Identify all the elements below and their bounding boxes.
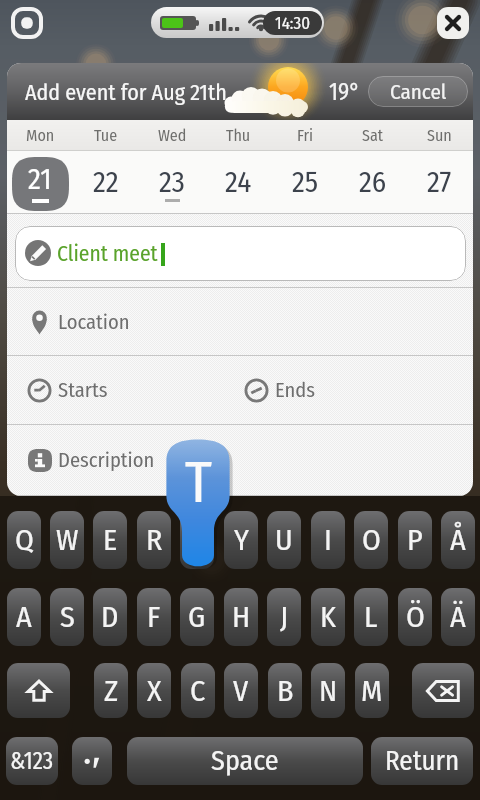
button[interactable]: K — [311, 588, 345, 646]
button[interactable]: &123 — [6, 737, 58, 785]
button[interactable]: B — [268, 663, 302, 718]
button[interactable]: 26 — [339, 151, 406, 214]
button[interactable]: 21 — [7, 151, 73, 214]
staticText: U — [275, 522, 293, 558]
staticText: 21 — [28, 162, 52, 197]
staticText: Description — [58, 448, 155, 473]
button[interactable]: J — [267, 588, 301, 646]
button[interactable]: Ö — [398, 588, 432, 646]
staticText: Ö — [406, 599, 425, 635]
button[interactable]: Home — [11, 7, 43, 39]
staticText: Y — [234, 522, 249, 558]
button[interactable]: A — [7, 588, 41, 646]
staticText: Tue — [94, 126, 118, 145]
staticText: M — [361, 673, 383, 709]
staticText: 25 — [292, 165, 319, 200]
button[interactable]: O — [354, 511, 388, 569]
staticText: C — [190, 673, 206, 709]
staticText: 26 — [359, 165, 387, 200]
staticText: Client meet — [57, 241, 158, 267]
staticText: J — [280, 599, 289, 635]
staticText: Å — [450, 522, 466, 558]
staticText: D — [101, 599, 119, 635]
button[interactable]: 22 — [73, 151, 139, 214]
staticText: 27 — [427, 165, 452, 200]
staticText: Add event for Aug 21th — [25, 79, 227, 105]
staticText: Fri — [297, 126, 314, 145]
button[interactable]: Starts — [21, 356, 171, 425]
button[interactable]: N — [311, 663, 345, 718]
button[interactable]: Close — [437, 7, 469, 39]
button[interactable]: F — [137, 588, 171, 646]
button[interactable]: 23 — [139, 151, 205, 214]
staticText: H — [232, 599, 251, 635]
staticText: Ä — [450, 599, 466, 635]
button[interactable]: Status indicators — [151, 7, 324, 38]
staticText: Location — [58, 310, 130, 335]
button[interactable]: Backspace — [412, 663, 474, 718]
button[interactable]: Client meet — [15, 226, 466, 281]
button[interactable]: U — [267, 511, 301, 569]
staticText: Wed — [158, 126, 187, 145]
button[interactable]: Cancel — [368, 76, 468, 107]
button[interactable]: M — [355, 663, 389, 718]
button[interactable]: R — [137, 511, 171, 569]
button[interactable]: Ends — [237, 356, 377, 425]
button[interactable]: C — [181, 663, 215, 718]
staticText: Q — [15, 522, 34, 558]
button[interactable]: Y — [224, 511, 258, 569]
button[interactable]: Location — [7, 288, 473, 356]
button[interactable]: H — [224, 588, 258, 646]
staticText: 23 — [159, 165, 185, 200]
button[interactable]: Space — [127, 737, 363, 785]
button[interactable]: Shift — [7, 663, 70, 718]
button[interactable]: V — [224, 663, 258, 718]
button[interactable]: G — [180, 588, 214, 646]
staticText: 22 — [93, 165, 119, 200]
button[interactable]: Å — [441, 511, 475, 569]
button[interactable]: X — [137, 663, 171, 718]
staticText: Sat — [362, 126, 384, 145]
button[interactable]: D — [93, 588, 127, 646]
staticText: F — [147, 599, 161, 635]
staticText: T — [185, 448, 212, 518]
staticText: Cancel — [390, 79, 447, 104]
button[interactable]: 25 — [272, 151, 339, 214]
button[interactable]: E — [93, 511, 127, 569]
button[interactable]: Z — [94, 663, 128, 718]
button[interactable]: L — [354, 588, 388, 646]
staticText: V — [233, 673, 249, 709]
button[interactable]: 24 — [205, 151, 272, 214]
staticText: T — [190, 522, 204, 558]
staticText: Thu — [226, 126, 251, 145]
staticText: E — [103, 522, 118, 558]
button[interactable]: Punctuation — [72, 737, 112, 785]
button[interactable]: S — [50, 588, 84, 646]
button[interactable]: I — [311, 511, 345, 569]
staticText: &123 — [10, 747, 54, 775]
staticText: I — [324, 522, 332, 558]
staticText: 14:30 — [275, 13, 311, 33]
staticText: Mon — [26, 126, 55, 145]
button[interactable]: Ä — [441, 588, 475, 646]
button[interactable]: 27 — [406, 151, 473, 214]
staticText: A — [16, 599, 32, 635]
staticText: K — [320, 599, 336, 635]
staticText: Space — [211, 744, 279, 778]
button[interactable]: Return — [371, 737, 473, 785]
button[interactable]: T — [180, 511, 214, 569]
staticText: Ends — [275, 378, 315, 403]
staticText: G — [188, 599, 206, 635]
staticText: O — [362, 522, 381, 558]
staticText: Z — [104, 673, 119, 709]
staticText: W — [56, 522, 79, 558]
button[interactable]: Q — [7, 511, 41, 569]
staticText: Starts — [58, 378, 108, 403]
button[interactable]: Description — [7, 425, 473, 496]
staticText: R — [146, 522, 163, 558]
staticText: P — [407, 522, 423, 558]
button[interactable]: W — [50, 511, 84, 569]
staticText: X — [147, 673, 162, 709]
staticText: N — [319, 673, 338, 709]
button[interactable]: P — [398, 511, 432, 569]
